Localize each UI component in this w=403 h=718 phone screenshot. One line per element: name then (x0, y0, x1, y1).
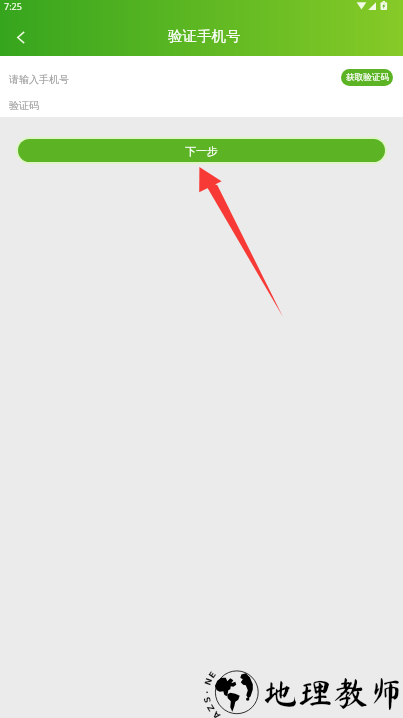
staticText: 获取验证码 (346, 72, 389, 83)
staticText: 请输入手机号 (9, 73, 69, 86)
staticText: 验证手机号 (168, 27, 241, 45)
button[interactable]: Back (4, 19, 40, 55)
staticText: 验证码 (9, 99, 39, 112)
staticText: 地理教师 (262, 675, 403, 710)
button[interactable]: 下一步 (18, 139, 385, 162)
button[interactable]: 获取验证码 (341, 69, 393, 86)
staticText: 下一步 (185, 144, 218, 158)
staticText: 7:25 (4, 0, 22, 12)
